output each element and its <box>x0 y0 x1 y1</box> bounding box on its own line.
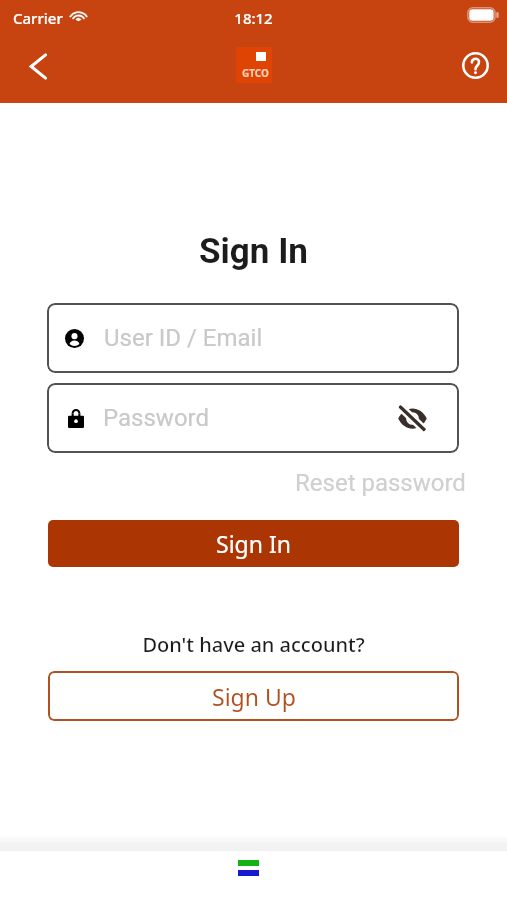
button[interactable]: User ID / Email <box>47 303 459 373</box>
staticText: Sign In <box>0 231 507 272</box>
staticText: Don't have an account? <box>0 631 507 658</box>
staticText: 18:12 <box>0 8 507 28</box>
button[interactable]: Password <box>47 383 459 453</box>
button[interactable]: Reset password <box>295 465 466 501</box>
button[interactable]: Sign In <box>48 520 459 567</box>
button[interactable]: Back <box>16 44 60 88</box>
staticText: Password <box>103 404 210 432</box>
staticText: Sign Up <box>212 681 296 712</box>
staticText: Sign In <box>216 528 291 559</box>
staticText: Carrier <box>13 8 63 28</box>
button[interactable]: Help <box>453 43 497 87</box>
staticText: User ID / Email <box>104 324 263 352</box>
staticText: GTCO <box>242 66 269 80</box>
button[interactable]: GTCO logo <box>236 47 272 83</box>
button[interactable]: Show password <box>394 400 430 436</box>
button[interactable]: Sign Up <box>48 671 459 721</box>
